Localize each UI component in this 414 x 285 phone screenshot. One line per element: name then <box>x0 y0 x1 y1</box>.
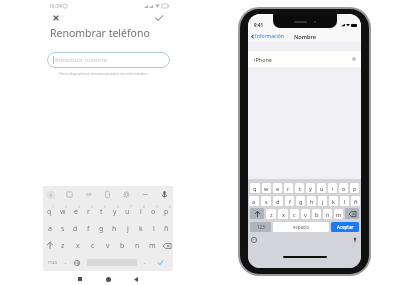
button[interactable]: k <box>329 196 338 206</box>
staticText: j <box>322 198 324 205</box>
button[interactable]: u <box>121 203 134 220</box>
button[interactable]: a <box>249 196 259 206</box>
button[interactable]: q <box>250 183 260 193</box>
button[interactable]: Clear <box>352 57 356 61</box>
staticText: 9 <box>156 205 158 209</box>
button[interactable]: o <box>147 203 160 220</box>
button[interactable]: GIF <box>84 190 93 199</box>
button[interactable]: y <box>108 203 121 220</box>
button[interactable]: x <box>278 209 288 219</box>
button[interactable]: Introducir nombre <box>47 52 170 68</box>
staticText: Introducir nombre <box>55 56 108 64</box>
button[interactable]: Clipboard <box>103 190 112 199</box>
button[interactable]: u <box>317 183 326 193</box>
button[interactable]: p <box>160 203 173 220</box>
button[interactable]: ?123 <box>45 254 61 271</box>
staticText: o <box>151 207 156 217</box>
button[interactable]: o <box>339 183 348 193</box>
button[interactable]: b <box>312 209 321 219</box>
staticText: w <box>60 207 66 217</box>
button[interactable]: Language <box>71 254 83 271</box>
button[interactable]: j <box>318 196 327 206</box>
button[interactable]: y <box>306 183 315 193</box>
button[interactable]: c <box>290 209 299 219</box>
staticText: Nombre <box>294 33 316 40</box>
button[interactable]: g <box>95 220 108 237</box>
button[interactable]: Stickers <box>65 190 74 199</box>
button[interactable]: ñ <box>160 220 173 237</box>
button[interactable]: s <box>56 220 69 237</box>
button[interactable]: n <box>323 209 332 219</box>
button[interactable]: l <box>147 220 160 237</box>
button[interactable]: h <box>108 220 121 237</box>
button[interactable]: w <box>262 183 271 193</box>
button[interactable]: j <box>121 220 134 237</box>
button[interactable]: e <box>273 183 282 193</box>
button[interactable]: r <box>284 183 293 193</box>
staticText: z <box>270 211 273 218</box>
button[interactable]: ñ <box>351 196 360 206</box>
button[interactable]: Voice <box>160 190 169 199</box>
button[interactable]: Home <box>106 277 111 282</box>
staticText: u <box>320 185 324 192</box>
button[interactable]: l <box>340 196 349 206</box>
button[interactable]: Back <box>47 191 55 199</box>
button[interactable]: x <box>70 237 85 254</box>
button[interactable]: s <box>261 196 271 206</box>
button[interactable]: v <box>100 237 115 254</box>
button[interactable]: Close <box>51 13 61 23</box>
button[interactable]: z <box>56 237 70 254</box>
button[interactable]: p <box>350 183 359 193</box>
button[interactable]: h <box>307 196 316 206</box>
staticText: p <box>164 207 169 217</box>
button[interactable]: d <box>273 196 283 206</box>
button[interactable]: Comma <box>61 254 71 271</box>
button[interactable]: b <box>115 237 130 254</box>
button[interactable]: Delete <box>345 208 359 219</box>
button[interactable]: Aceptar <box>331 222 359 232</box>
button[interactable]: f <box>82 220 95 237</box>
button[interactable]: i <box>134 203 147 220</box>
button[interactable]: f <box>285 196 294 206</box>
staticText: s <box>265 198 268 205</box>
staticText: n <box>326 211 330 218</box>
staticText: x <box>76 241 80 251</box>
button[interactable]: Información <box>250 33 284 40</box>
staticText: t <box>100 207 103 217</box>
button[interactable]: Shift <box>43 237 56 254</box>
button[interactable]: Settings <box>122 190 131 199</box>
button[interactable]: espacio <box>273 222 329 232</box>
button[interactable]: n <box>130 237 145 254</box>
button[interactable]: r <box>82 203 95 220</box>
button[interactable]: Emoji <box>251 237 257 243</box>
button[interactable]: d <box>69 220 82 237</box>
button[interactable]: i <box>328 183 337 193</box>
button[interactable]: c <box>85 237 100 254</box>
button[interactable]: m <box>334 209 343 219</box>
button[interactable]: Confirm <box>154 13 164 23</box>
button[interactable]: z <box>266 209 276 219</box>
button[interactable]: Dictate <box>352 237 358 243</box>
button[interactable]: w <box>56 203 69 220</box>
button[interactable]: Shift <box>250 208 264 219</box>
button[interactable]: k <box>134 220 147 237</box>
staticText: q <box>47 207 52 217</box>
button[interactable]: Delete <box>160 237 173 254</box>
button[interactable]: Enter <box>153 254 167 271</box>
button[interactable]: t <box>295 183 304 193</box>
button[interactable]: v <box>301 209 310 219</box>
button[interactable]: Back <box>134 277 138 282</box>
staticText: v <box>106 241 110 251</box>
button[interactable]: e <box>69 203 82 220</box>
button[interactable]: q <box>43 203 56 220</box>
button[interactable]: 123 <box>250 222 271 232</box>
staticText: b <box>120 241 125 251</box>
button[interactable]: m <box>145 237 160 254</box>
button[interactable]: g <box>296 196 305 206</box>
button[interactable]: a <box>43 220 56 237</box>
button[interactable]: More <box>141 190 150 199</box>
button[interactable]: t <box>95 203 108 220</box>
